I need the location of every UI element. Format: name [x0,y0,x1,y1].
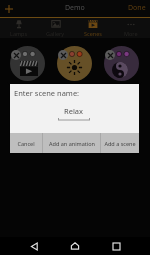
button[interactable]: Scenes [74,18,112,38]
button[interactable]: Scene [10,46,45,81]
button[interactable]: Remove scene [58,50,68,60]
button[interactable]: Remove scene [105,50,115,60]
staticText: Enter scene name: [14,88,80,98]
button[interactable]: Home [65,237,85,255]
button[interactable]: Scene [57,46,92,81]
staticText: Relax [64,106,84,116]
staticText: Add an animation [49,140,95,147]
button[interactable]: Add a scene [101,133,139,153]
button[interactable]: Remove scene [11,50,21,60]
button[interactable]: Gallery [37,18,74,38]
button[interactable]: Back [24,237,44,255]
button[interactable]: Add an animation [43,133,100,153]
staticText: More [124,30,138,37]
staticText: Gallery [46,30,65,37]
staticText: Demo [65,3,85,13]
button[interactable]: Done [128,0,146,17]
staticText: Add a scene [104,140,136,147]
staticText: Done [128,3,146,13]
button[interactable]: Scene [104,46,139,81]
button[interactable]: Recents [106,237,126,255]
button[interactable]: Lamps [0,18,37,38]
button[interactable]: Add [0,0,17,17]
staticText: Scenes [84,30,102,37]
staticText: Cancel [17,140,35,147]
staticText: Lamps [10,30,28,37]
button[interactable]: Cancel [10,133,42,153]
